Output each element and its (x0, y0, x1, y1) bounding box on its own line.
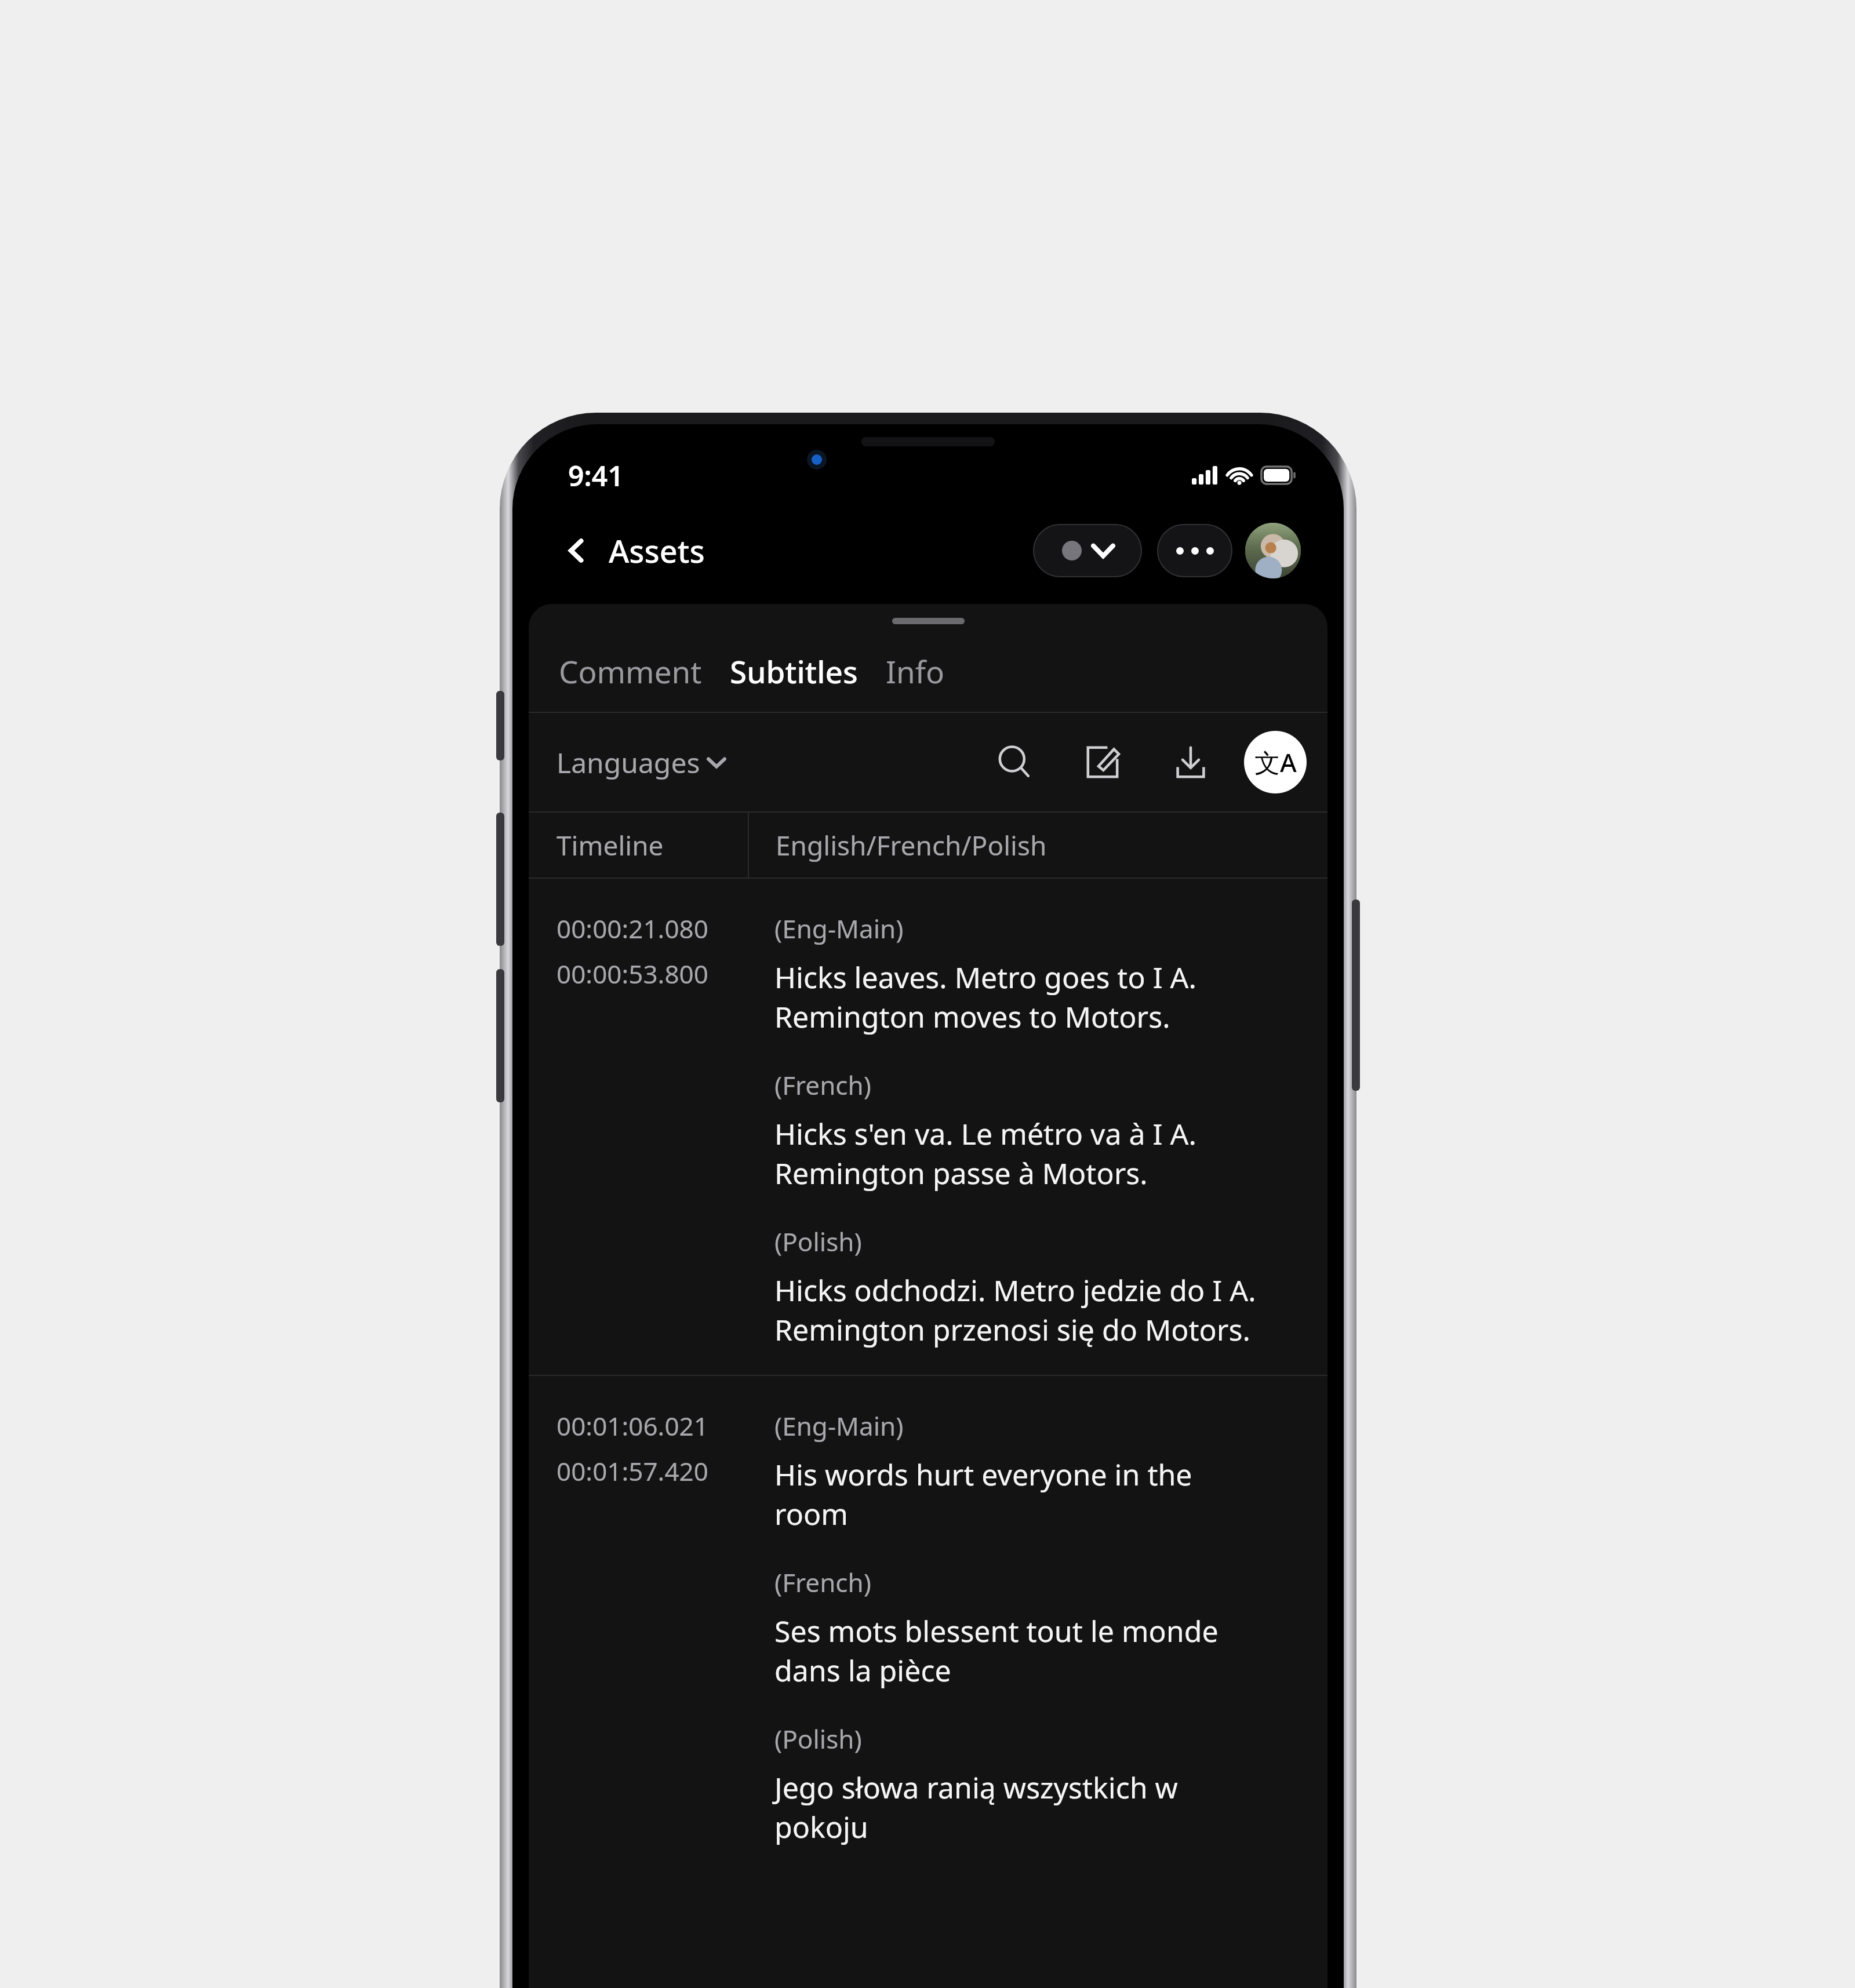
staticText: 文A (1254, 745, 1297, 780)
button[interactable]: Edit (1071, 731, 1134, 793)
staticText: Subtitles (730, 650, 858, 692)
button[interactable]: Back (555, 529, 598, 572)
button[interactable]: 00:00:21.080 (529, 879, 1327, 1375)
staticText: Languages (556, 744, 700, 781)
staticText: 00:00:21.080 (556, 911, 708, 946)
button[interactable]: Info (883, 641, 947, 701)
button[interactable]: Subtitles (728, 641, 860, 701)
staticText: (Polish) (774, 1224, 862, 1259)
staticText: (Eng-Main) (774, 1408, 904, 1443)
staticText: Hicks odchodzi. Metro jedzie do I A. Rem… (774, 1270, 1256, 1349)
staticText: Jego słowa ranią wszystkich w pokoju (774, 1768, 1178, 1847)
staticText: Timeline (556, 827, 664, 864)
button[interactable]: Comment (556, 641, 704, 701)
staticText: His words hurt everyone in the room (774, 1455, 1192, 1534)
staticText: Comment (559, 650, 702, 692)
staticText: (Polish) (774, 1721, 862, 1756)
staticText: Hicks s'en va. Le métro va à I A. Reming… (774, 1114, 1196, 1193)
button[interactable]: Translate (1244, 731, 1307, 793)
staticText: Ses mots blessent tout le monde dans la … (774, 1611, 1219, 1690)
button[interactable]: Profile (1245, 523, 1301, 578)
staticText: (French) (774, 1068, 871, 1102)
staticText: Hicks leaves. Metro goes to I A. Remingt… (774, 957, 1196, 1036)
button[interactable]: Search (983, 731, 1046, 793)
button[interactable]: More options (1157, 524, 1232, 577)
staticText: Info (886, 650, 945, 692)
button[interactable]: Status (1033, 524, 1142, 577)
staticText: Assets (609, 529, 705, 572)
button[interactable]: 00:01:06.021 (529, 1376, 1327, 1872)
staticText: 00:01:06.021 (556, 1408, 708, 1443)
staticText: (French) (774, 1565, 871, 1600)
staticText: 00:00:53.800 (556, 956, 708, 991)
button[interactable]: Languages (556, 734, 725, 791)
staticText: English/French/Polish (776, 827, 1047, 864)
staticText: 00:01:57.420 (556, 1454, 708, 1488)
staticText: (Eng-Main) (774, 911, 904, 946)
staticText: 9:41 (568, 457, 624, 494)
button[interactable]: Download (1159, 731, 1222, 793)
